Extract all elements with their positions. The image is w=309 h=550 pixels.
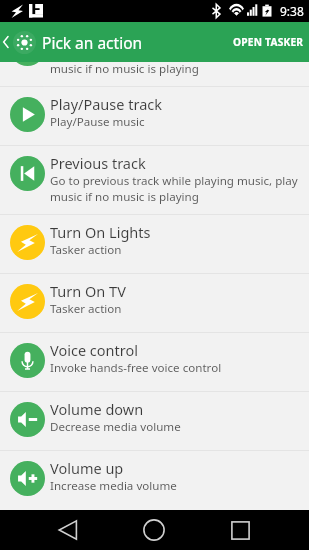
staticText: OPEN TASKER: [233, 35, 304, 49]
staticText: Voice control: [50, 340, 138, 360]
staticText: Invoke hands-free voice control: [50, 360, 222, 376]
staticText: Decrease media volume: [50, 419, 181, 435]
button[interactable]: Home: [137, 513, 171, 547]
staticText: music if no music is playing: [50, 62, 199, 77]
button[interactable]: OPEN TASKER: [224, 22, 309, 62]
staticText: 9:38: [280, 3, 304, 19]
staticText: Turn On TV: [50, 281, 126, 301]
staticText: Turn On Lights: [50, 222, 151, 242]
staticText: Play/Pause music: [50, 114, 145, 130]
button[interactable]: Recent apps: [223, 513, 257, 547]
staticText: Volume up: [50, 458, 124, 478]
staticText: Pick an action: [42, 32, 143, 53]
staticText: Volume down: [50, 399, 144, 419]
staticText: music if no music is playing: [50, 189, 199, 205]
button[interactable]: Volume down: [0, 392, 309, 450]
button[interactable]: Turn On TV: [0, 274, 309, 332]
staticText: Go to previous track while playing music…: [50, 173, 298, 189]
button[interactable]: Back: [0, 22, 13, 62]
button[interactable]: Play/Pause track: [0, 87, 309, 145]
staticText: Tasker action: [50, 301, 122, 317]
button[interactable]: Previous track: [0, 146, 309, 214]
button[interactable]: Back: [51, 513, 85, 547]
staticText: Previous track: [50, 153, 146, 173]
button[interactable]: Volume up: [0, 451, 309, 509]
staticText: Tasker action: [50, 242, 122, 258]
button[interactable]: Voice control: [0, 333, 309, 391]
staticText: Play/Pause track: [50, 94, 162, 114]
button[interactable]: Turn On Lights: [0, 215, 309, 273]
staticText: Increase media volume: [50, 478, 177, 494]
